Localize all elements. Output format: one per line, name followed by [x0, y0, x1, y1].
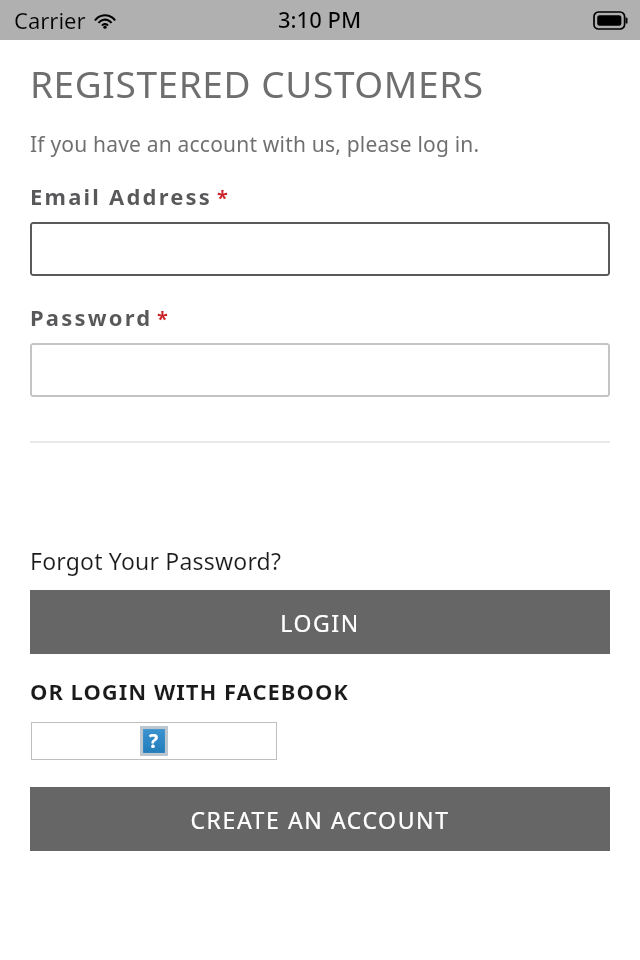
button[interactable]: CREATE AN ACCOUNT	[30, 787, 610, 851]
staticText: Email Address	[30, 181, 213, 211]
staticText: CREATE AN ACCOUNT	[190, 804, 450, 835]
staticText: OR LOGIN WITH FACEBOOK	[30, 676, 349, 706]
staticText: Password	[30, 302, 153, 332]
staticText: LOGIN	[280, 607, 360, 638]
button[interactable]: Forgot Your Password?	[30, 543, 282, 578]
button[interactable]: LOGIN	[30, 590, 610, 654]
staticText: *	[157, 305, 168, 332]
staticText: *	[217, 184, 228, 211]
staticText: REGISTERED CUSTOMERS	[30, 58, 484, 108]
button[interactable]: Login with Facebook	[31, 722, 277, 760]
button[interactable]	[30, 343, 610, 397]
staticText: Forgot Your Password?	[30, 545, 282, 576]
staticText: ?	[149, 728, 159, 754]
staticText: If you have an account with us, please l…	[30, 130, 480, 159]
staticText: Carrier	[14, 5, 86, 35]
staticText: 3:10 PM	[278, 4, 362, 34]
button[interactable]	[30, 222, 610, 276]
